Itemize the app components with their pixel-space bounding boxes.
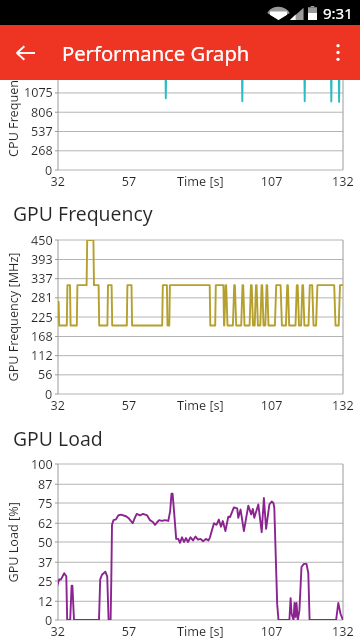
button[interactable]: Back	[0, 25, 50, 80]
staticText: Performance Graph	[62, 39, 250, 67]
button[interactable]: More options	[316, 25, 360, 80]
staticText: 9:31	[323, 3, 353, 23]
